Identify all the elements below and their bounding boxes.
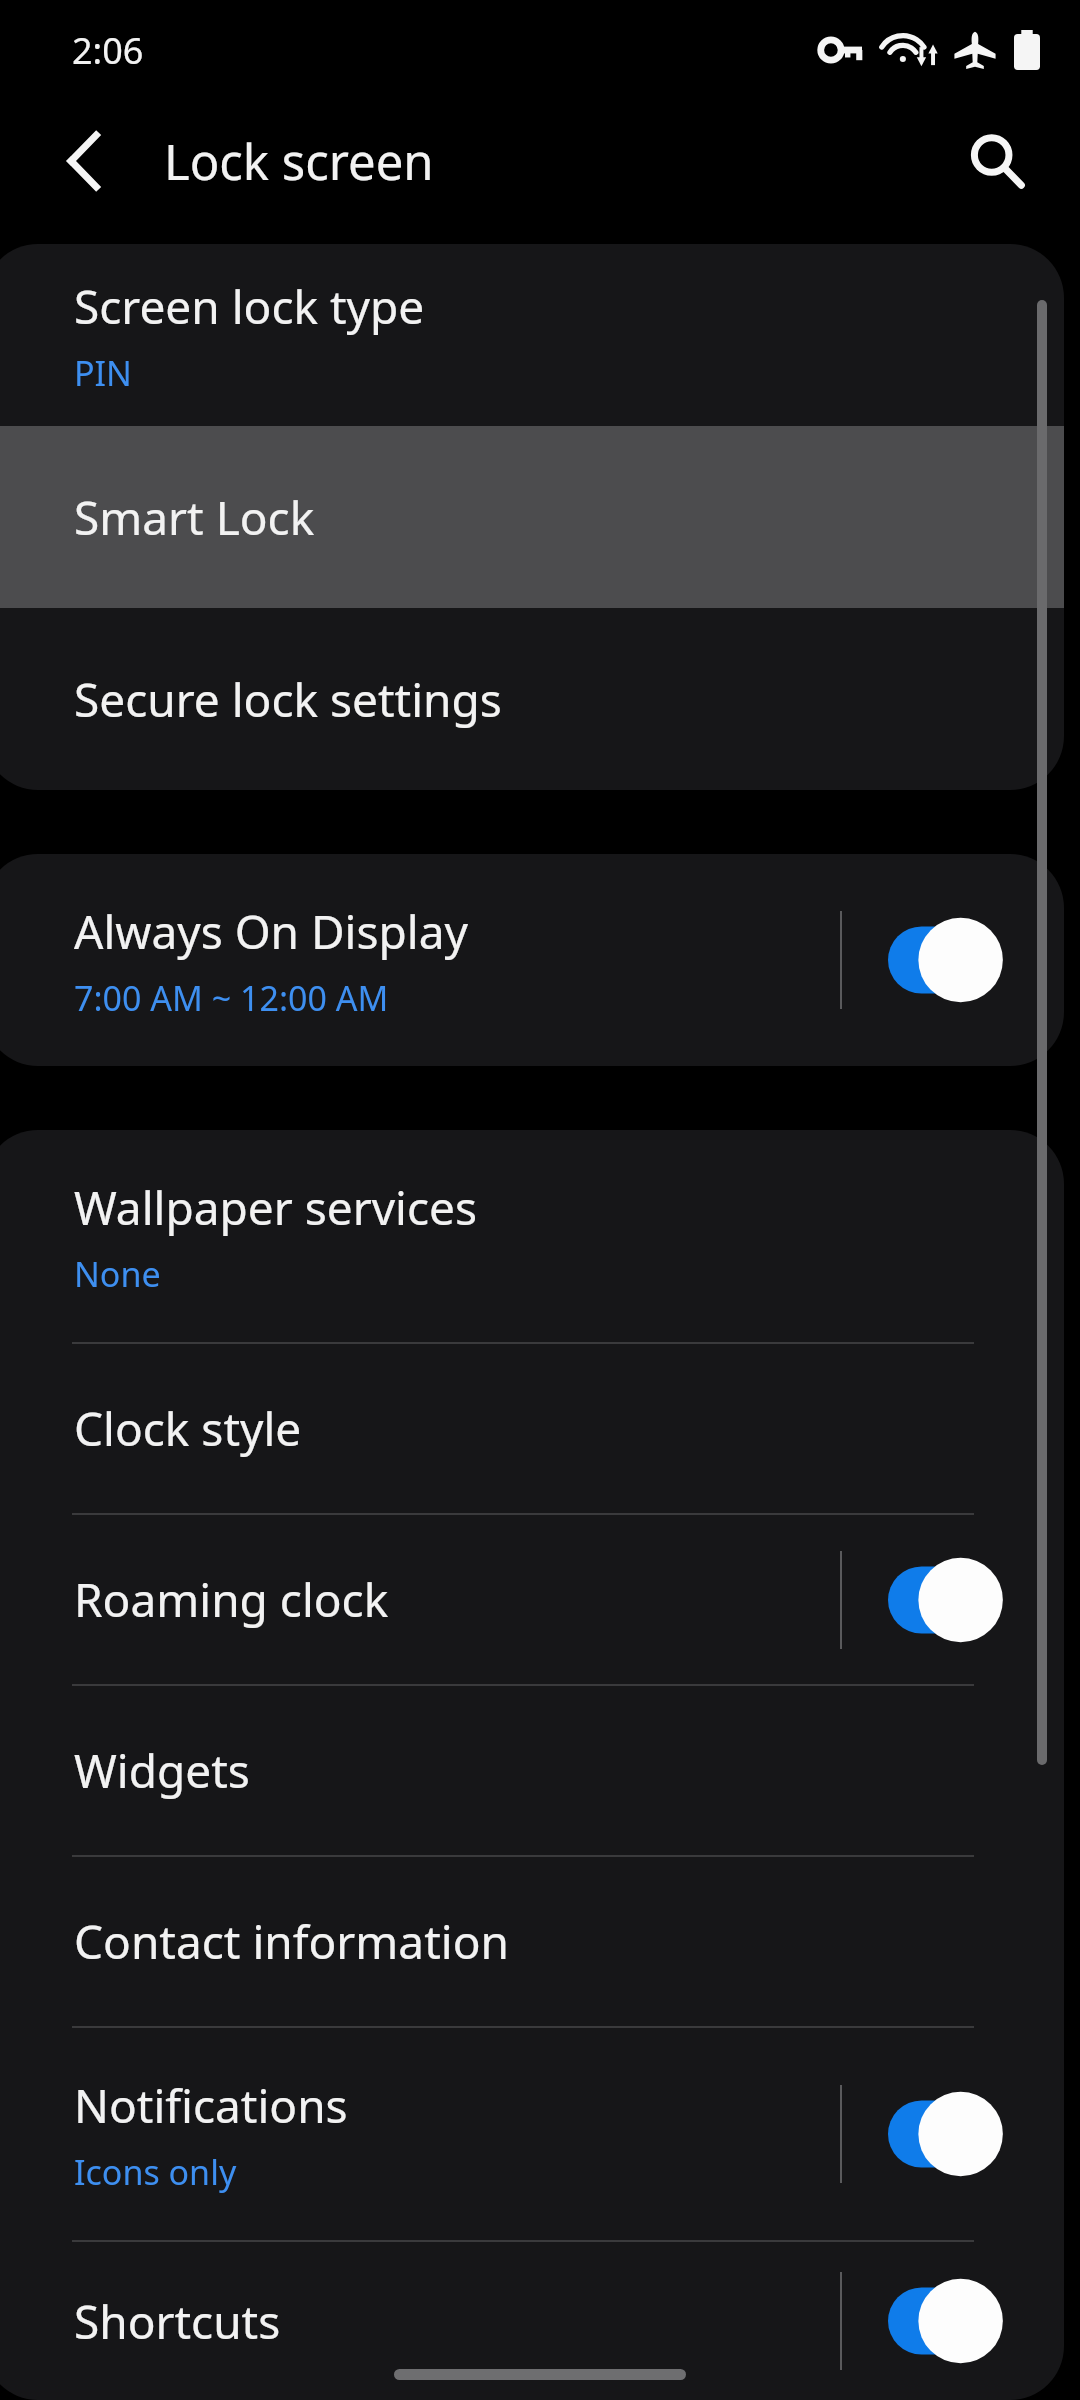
staticText: None (74, 1251, 161, 1297)
button[interactable]: Contact information (0, 1857, 1064, 2026)
staticText: Always On Display (74, 900, 468, 963)
button[interactable]: Wallpaper services (0, 1130, 1064, 1342)
staticText: 7:00 AM ~ 12:00 AM (74, 975, 389, 1021)
staticText: Smart Lock (74, 486, 315, 549)
button[interactable]: Search (954, 119, 1038, 203)
staticText: Widgets (74, 1739, 250, 1802)
staticText: Clock style (74, 1397, 302, 1460)
button[interactable]: Roaming clock (0, 1515, 1064, 1684)
staticText: Lock screen (164, 128, 434, 195)
staticText: 2:06 (72, 26, 144, 75)
button[interactable]: Always On Display switch, on (888, 912, 1008, 1008)
button[interactable]: Roaming clock switch, on (888, 1552, 1008, 1648)
button[interactable]: Shortcuts (0, 2242, 1064, 2400)
staticText: Shortcuts (74, 2290, 281, 2353)
staticText: Secure lock settings (74, 668, 502, 731)
button[interactable]: Notifications (0, 2028, 1064, 2240)
staticText: Notifications (74, 2074, 348, 2137)
staticText: Wallpaper services (74, 1176, 477, 1239)
staticText: Icons only (74, 2149, 237, 2195)
button[interactable]: Smart Lock (0, 426, 1064, 608)
button[interactable]: Shortcuts switch, on (888, 2273, 1008, 2369)
staticText: Screen lock type (74, 275, 425, 338)
button[interactable]: Widgets (0, 1686, 1064, 1855)
button[interactable]: Secure lock settings (0, 608, 1064, 790)
button[interactable]: Screen lock type (0, 244, 1064, 426)
button[interactable]: Notifications switch, on (888, 2086, 1008, 2182)
staticText: Roaming clock (74, 1568, 389, 1631)
button[interactable]: Back (44, 121, 124, 201)
staticText: PIN (74, 350, 132, 396)
staticText: Contact information (74, 1910, 509, 1973)
button[interactable]: Clock style (0, 1344, 1064, 1513)
button[interactable]: Always On Display (0, 854, 1064, 1066)
